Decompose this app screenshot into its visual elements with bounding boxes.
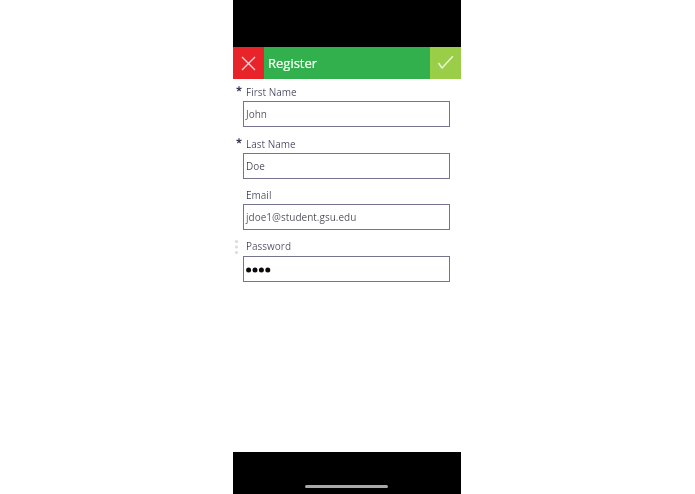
button[interactable]	[243, 256, 450, 282]
staticText: John	[246, 107, 267, 121]
button[interactable]: Confirm	[430, 47, 461, 79]
staticText: jdoe1@student.gsu.edu	[246, 210, 357, 224]
button[interactable]: jdoe1@student.gsu.edu	[243, 204, 450, 230]
staticText: Doe	[246, 159, 265, 173]
staticText: Register	[268, 54, 318, 72]
button[interactable]: John	[243, 101, 450, 127]
staticText: Last Name	[246, 137, 296, 151]
staticText: Email	[246, 188, 272, 202]
staticText: Password	[246, 239, 292, 253]
button[interactable]: Doe	[243, 153, 450, 179]
button[interactable]: Close	[233, 47, 264, 79]
staticText: First Name	[246, 85, 297, 99]
